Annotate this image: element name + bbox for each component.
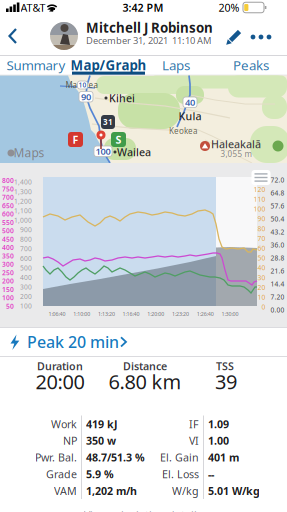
staticText: 100 — [20, 302, 32, 310]
staticText: 7.20 — [270, 293, 284, 301]
button[interactable]: Edit — [223, 25, 247, 49]
staticText: Haleakalā — [211, 137, 261, 151]
staticText: VAM — [54, 484, 77, 498]
staticText: 60 — [257, 244, 265, 253]
staticText: 50 — [6, 302, 14, 310]
staticText: Peak 20 min — [27, 331, 119, 352]
staticText: Kihei — [109, 91, 135, 105]
staticText: 550 — [2, 218, 14, 227]
button[interactable]: Back — [0, 23, 26, 49]
staticText: TSS — [216, 359, 234, 373]
staticText: 1,100 — [14, 206, 32, 215]
staticText: 30 — [257, 273, 265, 282]
staticText: 80 — [257, 224, 265, 233]
staticText: 750 — [2, 184, 14, 193]
staticText: December 31, 2021 11:10 AM — [86, 34, 211, 47]
staticText: 3:42 PM — [122, 0, 163, 15]
staticText: 5.01 W/kg — [208, 484, 260, 498]
staticText: 600 — [2, 210, 14, 218]
staticText: 401 m — [208, 450, 239, 464]
staticText: 36.0 — [270, 241, 284, 249]
staticText: 40 — [257, 263, 265, 272]
staticText: 21.6 — [270, 267, 284, 275]
staticText: 90 — [257, 214, 265, 223]
staticText: Laps — [162, 56, 190, 74]
staticText: 0.00 — [270, 306, 284, 314]
staticText: 50 — [257, 253, 265, 262]
staticText: 40 — [185, 96, 195, 108]
staticText: 700 — [2, 193, 14, 202]
staticText: 1,400 — [14, 178, 32, 186]
staticText: 300 — [20, 282, 32, 291]
staticText: 0 — [261, 303, 265, 311]
staticText: 900 — [20, 225, 32, 234]
staticText: 14.4 — [270, 280, 284, 288]
staticText: 300 — [2, 260, 14, 269]
staticText: 400 — [20, 273, 32, 282]
button[interactable]: Laps — [137, 56, 215, 74]
staticText: F — [72, 132, 78, 147]
staticText: 1:23:20 — [172, 310, 189, 318]
staticText: El. Loss — [162, 467, 199, 481]
staticText: 10 — [257, 293, 265, 302]
staticText: 1:26:40 — [197, 310, 214, 318]
staticText: W/kg — [172, 484, 199, 498]
button[interactable]: More — [245, 24, 277, 50]
button[interactable]: Peak 20 min — [0, 327, 287, 356]
staticText: 20 — [257, 283, 265, 292]
staticText: NP — [63, 434, 77, 448]
staticText: Work — [51, 417, 77, 431]
staticText: 600 — [20, 254, 32, 263]
staticText: 72.0 — [270, 176, 284, 184]
staticText: 20:00 — [35, 368, 84, 395]
staticText: 250 — [2, 268, 14, 277]
staticText: 6.80 km — [108, 368, 181, 395]
staticText: 50.4 — [270, 215, 284, 223]
staticText: 800 — [20, 235, 32, 244]
staticText: 28.8 — [270, 254, 284, 262]
staticText: Summary — [6, 56, 65, 74]
staticText: VI — [189, 434, 199, 448]
staticText: 1:10:00 — [73, 310, 90, 318]
staticText: 1,300 — [14, 187, 32, 196]
staticText: 90 — [81, 91, 91, 103]
staticText: Kula — [178, 109, 201, 123]
staticText: 39 — [215, 368, 237, 395]
staticText: 419 kJ — [86, 417, 118, 431]
staticText: Peaks — [233, 56, 269, 74]
staticText: El. Gain — [160, 450, 199, 464]
button[interactable]: Summary — [0, 56, 75, 74]
staticText: 1:20:00 — [147, 310, 164, 318]
staticText: Duration — [37, 359, 83, 373]
staticText: AT&T — [20, 0, 45, 15]
staticText: 150 — [2, 285, 14, 294]
staticText: 450 — [2, 235, 14, 244]
staticText: 650 — [2, 201, 14, 210]
staticText: Pwr. Bal. — [35, 450, 77, 464]
staticText: 1:30:00 — [221, 310, 238, 318]
staticText: 1.09 — [208, 417, 229, 431]
staticText: 350 — [2, 251, 14, 260]
staticText: 200 — [2, 276, 14, 285]
staticText: 200 — [20, 292, 32, 301]
staticText: 1:16:40 — [123, 310, 140, 318]
button[interactable]: Map/Graph — [69, 56, 147, 74]
staticText: 700 — [20, 244, 32, 253]
staticText: 31 — [103, 117, 113, 127]
staticText: 70 — [257, 234, 265, 243]
staticText: 350 w — [86, 434, 116, 448]
button[interactable]: Peaks — [212, 56, 287, 74]
button[interactable]: Chart options — [251, 170, 270, 185]
staticText: -- — [208, 467, 214, 481]
staticText: 800 — [2, 176, 14, 185]
staticText: 43.2 — [270, 228, 284, 236]
staticText: 48.7/51.3 % — [86, 450, 145, 464]
staticText: Maps — [13, 144, 44, 160]
staticText: 64.8 — [270, 189, 284, 197]
staticText: IF — [189, 417, 199, 431]
staticText: 110 — [253, 195, 265, 204]
staticText: 1.00 — [208, 434, 229, 448]
staticText: 100 — [95, 145, 110, 157]
staticText: 5.9 % — [86, 467, 114, 481]
staticText: 1,202 m/h — [86, 484, 137, 498]
